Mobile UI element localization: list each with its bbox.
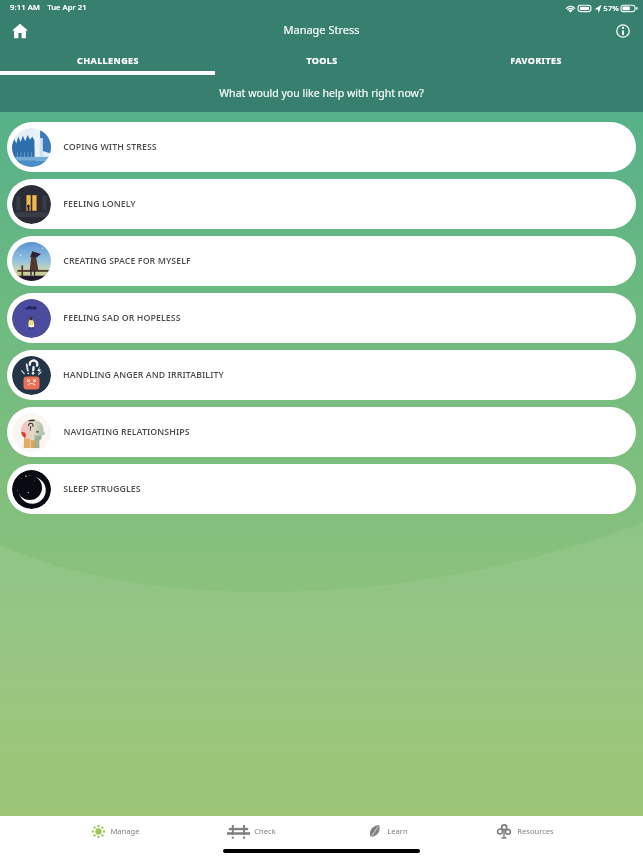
- button[interactable]: COPING WITH STRESS: [7, 122, 636, 172]
- button[interactable]: HANDLING ANGER AND IRRITABILITY: [7, 350, 636, 400]
- button[interactable]: NAVIGATING RELATIONSHIPS: [7, 407, 636, 457]
- staticText: SLEEP STRUGGLES: [63, 483, 141, 495]
- staticText: FAVORITES: [510, 54, 562, 66]
- staticText: FEELING SAD OR HOPELESS: [63, 312, 181, 324]
- button[interactable]: FEELING LONELY: [7, 179, 636, 229]
- button[interactable]: CHALLENGES: [0, 46, 215, 74]
- button[interactable]: CREATING SPACE FOR MYSELF: [7, 236, 636, 286]
- button[interactable]: SLEEP STRUGGLES: [7, 464, 636, 514]
- staticText: 9:11 AM: [10, 2, 40, 13]
- button[interactable]: Manage: [47, 816, 183, 846]
- button[interactable]: TOOLS: [215, 46, 429, 74]
- staticText: Learn: [387, 826, 408, 836]
- button[interactable]: Learn: [319, 816, 456, 846]
- staticText: 57%: [603, 3, 619, 14]
- button[interactable]: Resources: [456, 816, 593, 846]
- staticText: TOOLS: [306, 54, 338, 66]
- button[interactable]: Home: [5, 16, 35, 46]
- staticText: CHALLENGES: [77, 54, 139, 66]
- button[interactable]: FAVORITES: [429, 46, 643, 74]
- staticText: NAVIGATING RELATIONSHIPS: [63, 426, 190, 438]
- staticText: HANDLING ANGER AND IRRITABILITY: [63, 369, 224, 381]
- staticText: Tue Apr 21: [47, 2, 87, 13]
- staticText: CREATING SPACE FOR MYSELF: [63, 255, 191, 267]
- staticText: Manage Stress: [283, 22, 360, 37]
- staticText: Resources: [517, 826, 554, 836]
- button[interactable]: Information: [608, 16, 638, 46]
- staticText: What would you like help with right now?: [219, 86, 424, 100]
- button[interactable]: Check: [183, 816, 319, 846]
- staticText: Manage: [110, 826, 140, 836]
- staticText: Check: [254, 826, 276, 836]
- button[interactable]: FEELING SAD OR HOPELESS: [7, 293, 636, 343]
- staticText: COPING WITH STRESS: [63, 141, 157, 153]
- staticText: FEELING LONELY: [63, 198, 136, 210]
